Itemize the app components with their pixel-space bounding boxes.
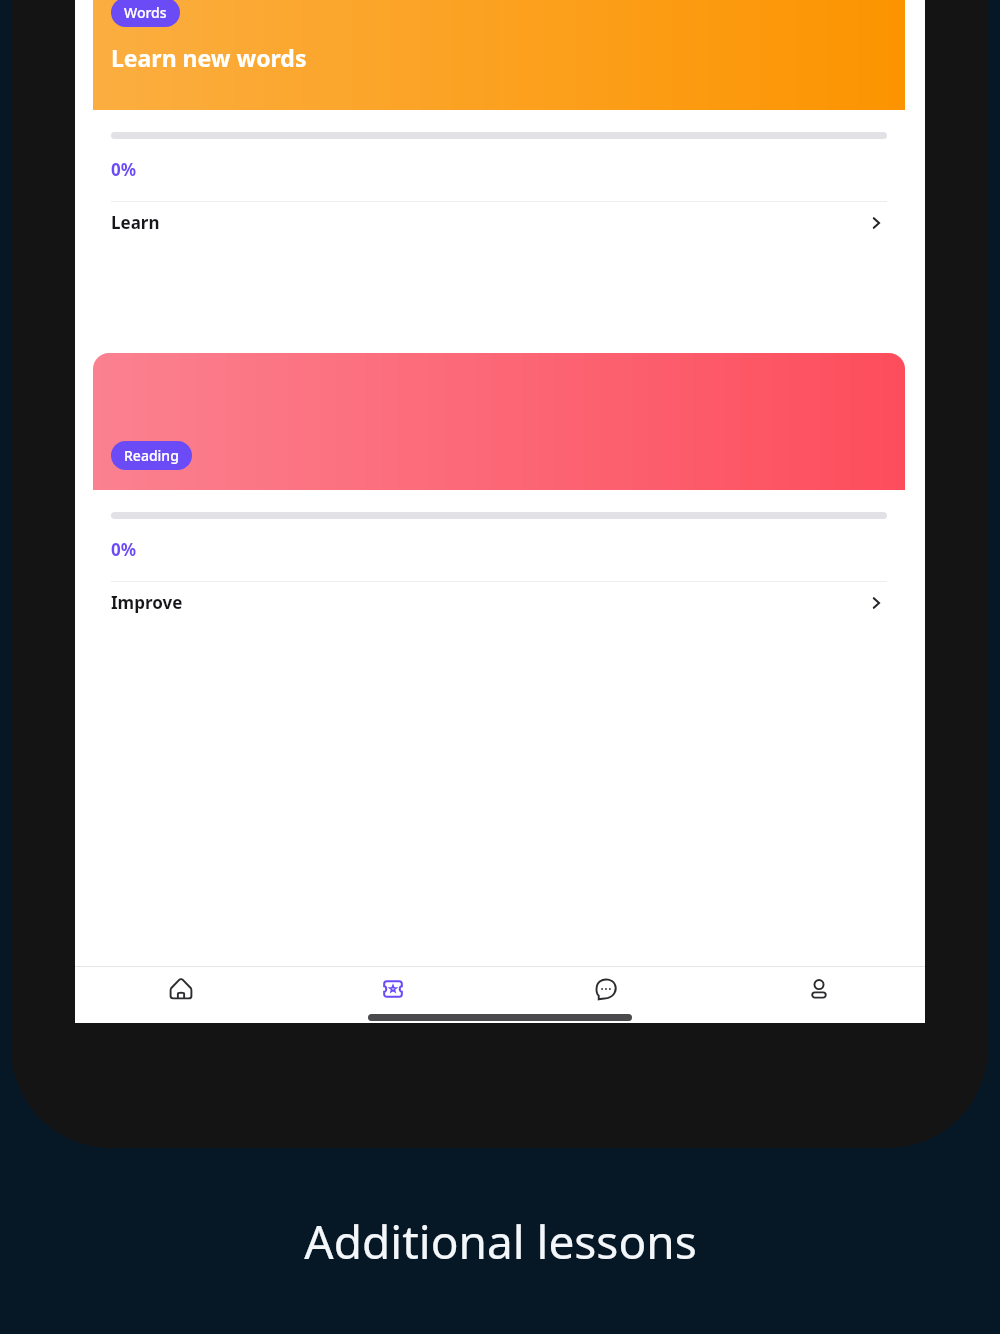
staticText: 0% [111, 158, 137, 181]
staticText: Learn new words [111, 42, 307, 73]
staticText: Additional lessons [304, 1210, 697, 1273]
staticText: Improve [111, 591, 865, 614]
button[interactable]: Profile [712, 967, 925, 1011]
staticText: Words [124, 3, 167, 22]
staticText: Improve reading [111, 485, 302, 490]
button[interactable]: Reading [93, 353, 905, 623]
button[interactable]: Messages [499, 967, 712, 1011]
staticText: 0% [111, 538, 137, 561]
staticText: Reading [124, 446, 179, 465]
button[interactable]: Words [93, 0, 905, 243]
button[interactable]: Lessons [287, 967, 499, 1011]
staticText: Learn [111, 211, 865, 234]
button[interactable]: Home [75, 967, 287, 1011]
